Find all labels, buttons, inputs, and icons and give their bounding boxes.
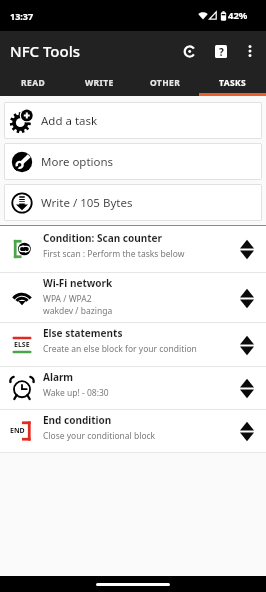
staticText: TASKS	[219, 77, 247, 89]
button[interactable]: Reorder	[239, 420, 255, 442]
staticText: First scan : Perform the tasks below	[43, 248, 185, 260]
button[interactable]: Wi-Fi network	[0, 273, 266, 322]
staticText: ELSE	[14, 340, 30, 350]
staticText: Else statements	[43, 326, 123, 340]
button[interactable]: WRITE	[66, 70, 132, 96]
staticText: WRITE	[85, 77, 114, 89]
staticText: Create an else block for your condition	[43, 343, 197, 355]
staticText: Close your conditional block	[43, 430, 156, 442]
staticText: More options	[41, 154, 114, 170]
button[interactable]: OTHER	[132, 70, 199, 96]
staticText: Condition: Scan counter	[43, 231, 162, 245]
staticText: wakdev / bazinga	[43, 305, 113, 317]
staticText: 42%	[228, 9, 248, 22]
button[interactable]: Reorder	[239, 238, 255, 260]
staticText: NFC Tools	[10, 41, 174, 61]
staticText: OTHER	[150, 77, 181, 89]
button[interactable]: Condition: Scan counter	[0, 226, 266, 272]
button[interactable]: More options	[237, 38, 263, 64]
button[interactable]: Write / 105 Bytes	[4, 184, 262, 221]
button[interactable]: ELSE	[0, 323, 266, 366]
button[interactable]: Add a task	[4, 102, 262, 139]
staticText: Write / 105 Bytes	[41, 195, 133, 211]
staticText: Wi-Fi network	[43, 276, 113, 290]
button[interactable]: Reorder	[239, 334, 255, 356]
staticText: READ	[21, 77, 46, 89]
button[interactable]: Reorder	[239, 377, 255, 399]
button[interactable]: Alarm	[0, 367, 266, 409]
staticText: Wake up! - 08:30	[43, 387, 109, 399]
button[interactable]: READ	[0, 70, 66, 96]
button[interactable]: END	[0, 410, 266, 452]
staticText: WPA / WPA2	[43, 293, 92, 305]
staticText: Alarm	[43, 370, 74, 384]
staticText: 13:37	[10, 10, 34, 22]
staticText: Add a task	[41, 113, 98, 129]
staticText: ?	[219, 45, 224, 58]
button[interactable]: More options	[4, 143, 262, 180]
button[interactable]: Dark mode	[174, 36, 204, 66]
staticText: End condition	[43, 413, 112, 427]
button[interactable]: Help	[206, 36, 236, 66]
staticText: END	[10, 426, 25, 436]
button[interactable]: Reorder	[239, 287, 255, 309]
button[interactable]: TASKS	[199, 70, 266, 96]
